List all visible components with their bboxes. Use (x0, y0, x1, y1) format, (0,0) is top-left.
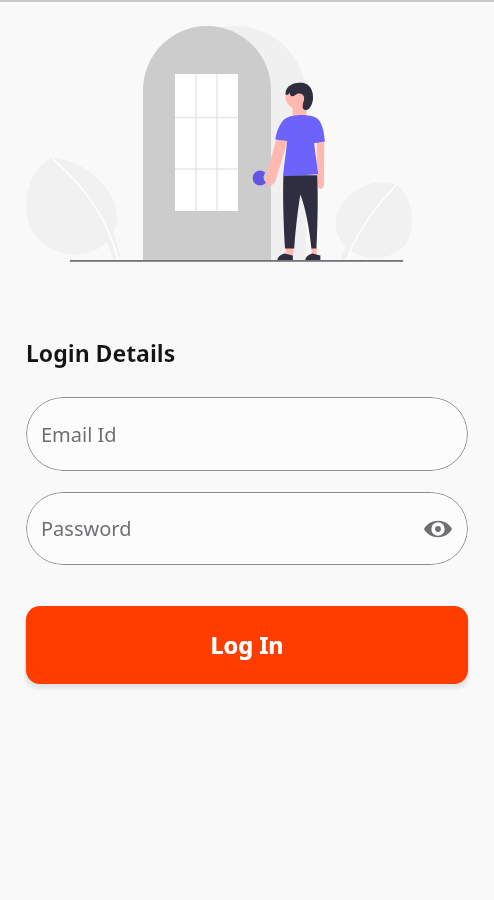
button[interactable]: Password (26, 492, 468, 565)
button[interactable]: Email Id (26, 397, 468, 471)
button[interactable]: Show password (419, 510, 457, 548)
button[interactable]: Log In (26, 606, 468, 684)
staticText: Email Id (41, 421, 117, 448)
staticText: Log In (210, 629, 284, 661)
staticText: Login Details (26, 337, 176, 368)
staticText: Password (41, 515, 132, 542)
